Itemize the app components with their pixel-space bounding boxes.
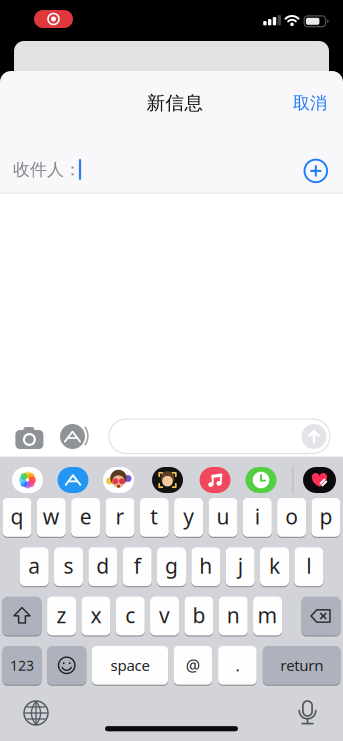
staticText: k	[269, 551, 280, 580]
staticText: 收件人：	[13, 159, 81, 180]
button[interactable]: return	[263, 646, 340, 685]
button[interactable]: i	[243, 498, 272, 537]
button[interactable]: k	[260, 547, 289, 586]
staticText: d	[96, 551, 109, 580]
button[interactable]: Send	[301, 424, 326, 449]
button[interactable]: b	[184, 597, 213, 635]
staticText: s	[63, 551, 73, 580]
staticText: i	[255, 502, 260, 531]
staticText: v	[159, 601, 170, 629]
button[interactable]: q	[2, 498, 31, 537]
staticText: 取消	[293, 92, 327, 114]
staticText: z	[57, 601, 67, 629]
staticText: n	[227, 601, 240, 629]
button[interactable]: n	[219, 597, 248, 635]
staticText: p	[319, 502, 332, 531]
staticText: h	[199, 551, 212, 580]
button[interactable]: h	[191, 547, 220, 586]
button[interactable]: u	[208, 498, 237, 537]
button[interactable]: Memoji	[152, 467, 183, 493]
button[interactable]: c	[116, 597, 145, 635]
button[interactable]: v	[150, 597, 179, 635]
button[interactable]: d	[88, 547, 117, 586]
button[interactable]: x	[81, 597, 110, 635]
staticText: x	[90, 601, 101, 629]
button[interactable]: Add contact	[302, 157, 330, 185]
staticText: t	[150, 502, 158, 531]
button[interactable]: Delete	[301, 597, 340, 635]
button[interactable]: Stop screen recording	[34, 10, 73, 28]
staticText: return	[280, 655, 323, 675]
staticText: e	[80, 502, 92, 531]
staticText: q	[10, 502, 23, 531]
button[interactable]: y	[174, 498, 203, 537]
button[interactable]: Music	[199, 467, 230, 493]
button[interactable]: Dictate	[294, 697, 320, 727]
button[interactable]: 123	[2, 646, 42, 685]
button[interactable]: Digital Touch	[303, 467, 336, 493]
staticText: space	[110, 655, 149, 675]
button[interactable]: z	[47, 597, 76, 635]
button[interactable]: App Store	[57, 467, 88, 493]
button[interactable]: e	[71, 498, 100, 537]
staticText: @	[186, 654, 200, 676]
button[interactable]: g	[157, 547, 186, 586]
button[interactable]: .	[218, 646, 257, 685]
staticText: a	[28, 551, 40, 580]
staticText: f	[134, 551, 141, 580]
button[interactable]: Next keyboard	[23, 700, 49, 726]
button[interactable]: Photos	[12, 467, 43, 493]
button[interactable]: iMessage apps	[59, 424, 91, 450]
button[interactable]: m	[253, 597, 282, 635]
button[interactable]: 取消	[267, 88, 327, 118]
button[interactable]: Message	[109, 419, 330, 454]
staticText: b	[192, 601, 205, 629]
staticText: g	[165, 551, 178, 580]
staticText: c	[125, 601, 135, 629]
staticText: o	[285, 502, 298, 531]
button[interactable]: Camera	[15, 424, 43, 450]
staticText: .	[235, 654, 239, 676]
staticText: r	[115, 502, 124, 531]
button[interactable]: @	[173, 646, 212, 685]
button[interactable]: a	[20, 547, 49, 586]
button[interactable]: t	[140, 498, 169, 537]
button[interactable]: s	[54, 547, 83, 586]
staticText: l	[306, 551, 311, 580]
button[interactable]: Emoji	[47, 646, 86, 685]
staticText: u	[216, 502, 229, 531]
button[interactable]: w	[37, 498, 66, 537]
button[interactable]: Shift	[2, 597, 41, 635]
staticText: 新信息	[146, 91, 203, 115]
staticText: 123	[10, 656, 34, 675]
staticText: y	[183, 502, 194, 531]
button[interactable]: space	[92, 646, 168, 685]
button[interactable]: Memoji Stickers	[103, 467, 134, 493]
staticText: w	[43, 502, 60, 531]
button[interactable]: f	[123, 547, 152, 586]
button[interactable]: p	[311, 498, 340, 537]
staticText: j	[238, 551, 243, 580]
button[interactable]: l	[294, 547, 323, 586]
button[interactable]: r	[105, 498, 134, 537]
button[interactable]: j	[226, 547, 255, 586]
button[interactable]: o	[277, 498, 306, 537]
button[interactable]: Recents	[245, 467, 276, 493]
staticText: m	[258, 601, 278, 629]
